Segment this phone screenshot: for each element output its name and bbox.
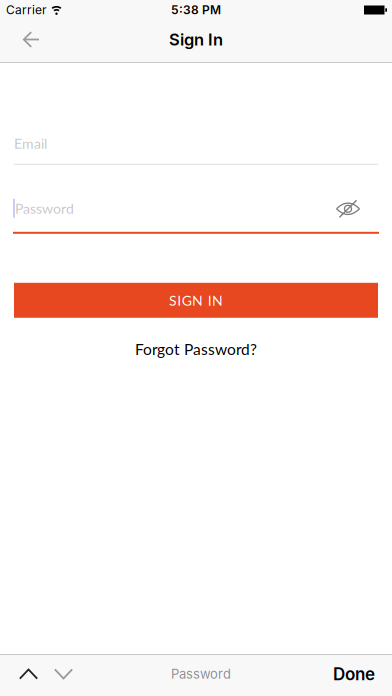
staticText: Sign In — [169, 29, 223, 49]
staticText: Password — [171, 666, 231, 682]
button[interactable]: Done — [321, 654, 392, 694]
staticText: Forgot Password? — [135, 340, 257, 358]
button[interactable]: Show password — [336, 199, 392, 217]
button[interactable]: Next field — [46, 653, 81, 694]
staticText: 5:38 PM — [171, 3, 221, 17]
button[interactable]: Back — [0, 20, 56, 62]
button[interactable]: Forgot Password? — [125, 332, 267, 366]
staticText: SIGN IN — [169, 292, 223, 309]
button[interactable]: Previous field — [0, 653, 46, 694]
staticText: Carrier — [6, 3, 47, 17]
staticText: Done — [333, 664, 375, 684]
staticText: Email — [14, 135, 47, 152]
button[interactable]: SIGN IN — [14, 283, 378, 318]
staticText: Password — [15, 200, 74, 217]
